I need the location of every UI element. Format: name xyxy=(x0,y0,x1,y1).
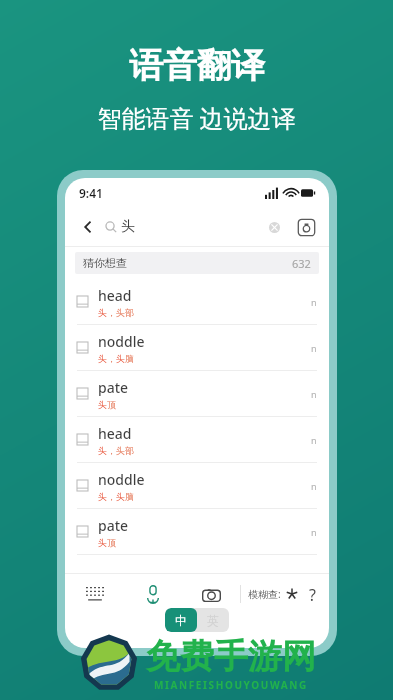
staticText: n xyxy=(311,296,317,308)
staticText: ， xyxy=(107,307,116,318)
button[interactable]: pate xyxy=(65,371,329,417)
staticText: 头 xyxy=(98,399,107,410)
button[interactable]: Voice input xyxy=(124,574,182,614)
staticText: noddle xyxy=(98,332,145,351)
staticText: 头 xyxy=(116,307,125,318)
button[interactable]: Scan photo xyxy=(293,214,319,240)
staticText: MIANFEISHOUYOUWANG xyxy=(154,678,308,692)
staticText: head xyxy=(98,424,132,443)
staticText: n xyxy=(311,388,317,400)
staticText: n xyxy=(311,526,317,538)
staticText: 头 xyxy=(98,537,107,548)
staticText: n xyxy=(311,434,317,446)
staticText: 头 xyxy=(116,491,125,502)
staticText: n xyxy=(311,342,317,354)
staticText: 脑 xyxy=(125,491,134,502)
staticText: 头 xyxy=(116,445,125,456)
staticText: 头 xyxy=(116,353,125,364)
staticText: 头 xyxy=(98,307,107,318)
button[interactable]: Camera xyxy=(182,574,240,614)
staticText: 智能语音 边说边译 xyxy=(97,101,296,134)
button[interactable]: Keyboard xyxy=(65,574,124,614)
button[interactable]: 中 xyxy=(165,608,229,632)
button[interactable]: Help xyxy=(302,584,322,604)
staticText: 模糊查: xyxy=(248,587,281,601)
button[interactable]: Wildcard star xyxy=(282,584,302,604)
staticText: 头 xyxy=(121,218,135,236)
staticText: 部 xyxy=(125,307,134,318)
staticText: 632 xyxy=(292,256,311,271)
button[interactable]: 头 xyxy=(105,218,263,236)
staticText: ， xyxy=(107,353,116,364)
staticText: ， xyxy=(107,491,116,502)
staticText: n xyxy=(311,480,317,492)
button[interactable]: head xyxy=(65,417,329,463)
staticText: head xyxy=(98,286,132,305)
staticText: 9:41 xyxy=(79,185,103,201)
staticText: ， xyxy=(107,445,116,456)
staticText: 猜你想查 xyxy=(83,256,127,270)
staticText: 头 xyxy=(98,353,107,364)
staticText: 部 xyxy=(125,445,134,456)
button[interactable]: pate xyxy=(65,509,329,555)
staticText: 头 xyxy=(98,445,107,456)
staticText: 顶 xyxy=(107,537,116,548)
staticText: 免费手游网 xyxy=(146,635,316,678)
button[interactable]: Back xyxy=(75,214,101,240)
button[interactable]: 猜你想查 xyxy=(83,252,311,274)
button[interactable]: Clear xyxy=(263,216,285,238)
staticText: pate xyxy=(98,378,129,397)
staticText: pate xyxy=(98,516,129,535)
button[interactable]: noddle xyxy=(65,325,329,371)
staticText: 脑 xyxy=(125,353,134,364)
staticText: 中 xyxy=(175,613,187,628)
button[interactable]: head xyxy=(65,279,329,325)
staticText: 头 xyxy=(98,491,107,502)
staticText: noddle xyxy=(98,470,145,489)
staticText: 顶 xyxy=(107,399,116,410)
staticText: ? xyxy=(309,584,316,604)
staticText: 英 xyxy=(207,613,219,628)
staticText: 语音翻译 xyxy=(129,44,265,87)
button[interactable]: noddle xyxy=(65,463,329,509)
